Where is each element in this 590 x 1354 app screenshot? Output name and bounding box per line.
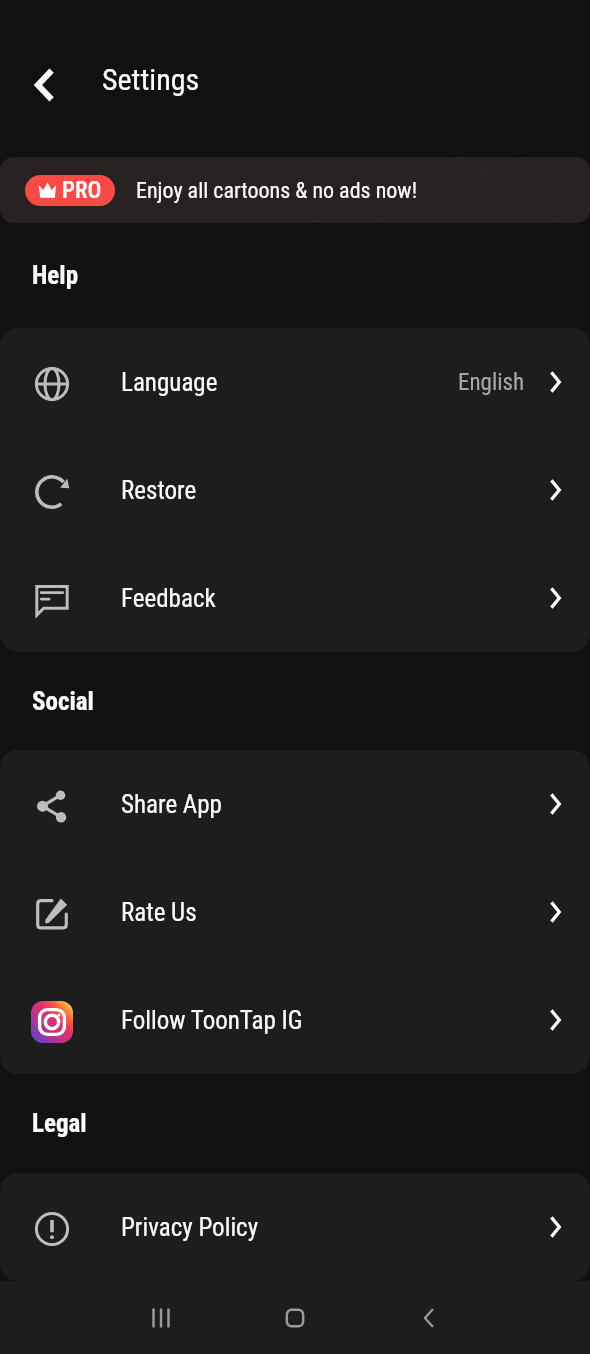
button[interactable]: PRO xyxy=(0,157,590,223)
staticText: Restore xyxy=(121,476,197,505)
staticText: Settings xyxy=(102,62,200,97)
staticText: Enjoy all cartoons & no ads now! xyxy=(136,178,418,204)
staticText: Follow ToonTap IG xyxy=(121,1006,303,1035)
staticText: Rate Us xyxy=(121,898,197,927)
button[interactable]: Privacy Policy xyxy=(0,1173,590,1281)
staticText: Legal xyxy=(32,1109,87,1138)
staticText: Feedback xyxy=(121,584,216,613)
button[interactable]: Home xyxy=(228,1281,362,1354)
staticText: Privacy Policy xyxy=(121,1213,259,1242)
staticText: Social xyxy=(32,687,94,716)
button[interactable]: Rate Us xyxy=(0,858,590,966)
button[interactable]: Restore xyxy=(0,436,590,544)
staticText: English xyxy=(458,369,525,396)
staticText: Help xyxy=(32,261,79,290)
staticText: PRO xyxy=(62,177,102,204)
button[interactable]: Follow ToonTap IG xyxy=(0,966,590,1074)
button[interactable]: Language xyxy=(0,328,590,436)
button[interactable]: Back xyxy=(8,49,80,121)
button[interactable]: Back xyxy=(362,1281,496,1354)
button[interactable]: Recents xyxy=(94,1281,228,1354)
staticText: Share App xyxy=(121,790,222,819)
button[interactable]: Feedback xyxy=(0,544,590,652)
button[interactable]: Share App xyxy=(0,750,590,858)
staticText: Language xyxy=(121,368,218,397)
